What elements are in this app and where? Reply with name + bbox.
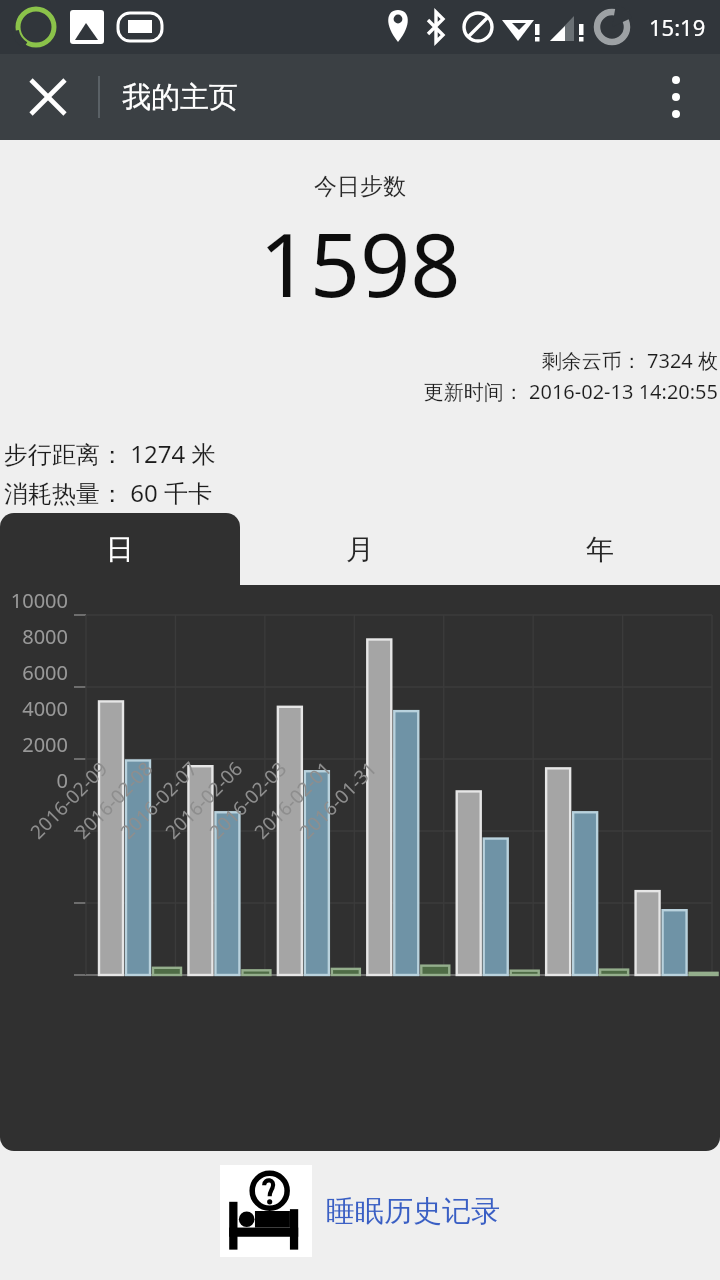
staticText: 8000 xyxy=(0,623,68,650)
button[interactable]: 年 xyxy=(480,513,720,585)
staticText: 月 xyxy=(346,532,374,567)
staticText: 消耗热量： 60 千卡 xyxy=(4,476,212,509)
staticText: 10000 xyxy=(0,587,68,614)
button[interactable]: Close xyxy=(14,63,82,131)
button[interactable]: 月 xyxy=(240,513,480,585)
staticText: 步行距离： 1274 米 xyxy=(4,437,216,470)
staticText: 1598 xyxy=(0,203,720,323)
staticText: 年 xyxy=(586,532,614,567)
button[interactable]: 日 xyxy=(0,513,240,585)
staticText: 4000 xyxy=(0,695,68,722)
staticText: 睡眠历史记录 xyxy=(326,1193,500,1230)
staticText: 2016-02-06 xyxy=(159,755,249,845)
staticText: 15:19 xyxy=(649,12,706,42)
staticText: 今日步数 xyxy=(0,172,720,201)
staticText: 6000 xyxy=(0,659,68,686)
staticText: 2016-02-08 xyxy=(69,755,159,845)
staticText: 2016-02-09 xyxy=(24,755,114,845)
staticText: 2016-02-01 xyxy=(248,755,338,845)
staticText: 日 xyxy=(106,532,134,567)
staticText: 2016-02-03 xyxy=(203,755,293,845)
staticText: 2016-02-07 xyxy=(114,755,204,845)
button[interactable]: More options xyxy=(642,63,710,131)
staticText: 2016-01-31 xyxy=(293,755,383,845)
staticText: 2000 xyxy=(0,731,68,758)
staticText: 0 xyxy=(0,767,68,794)
button[interactable]: 睡眠历史记录 xyxy=(0,1165,720,1257)
staticText: 我的主页 xyxy=(122,79,238,116)
staticText: 更新时间： 2016-02-13 14:20:55 xyxy=(0,378,718,405)
staticText: 剩余云币： 7324 枚 xyxy=(0,347,718,374)
